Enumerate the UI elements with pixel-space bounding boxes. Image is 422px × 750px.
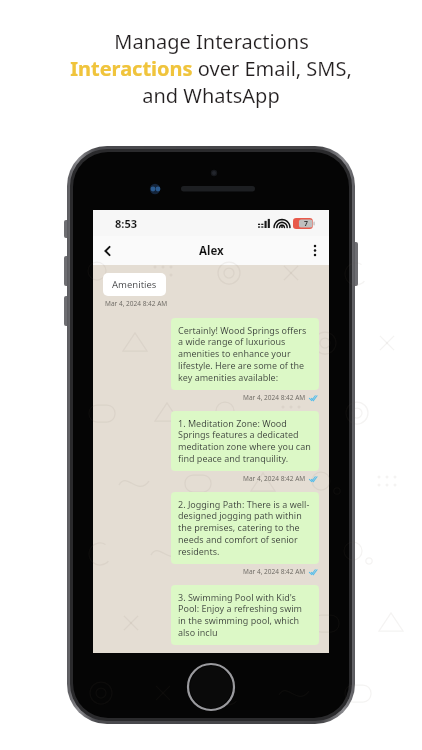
staticText: Manage Interactions xyxy=(114,28,309,55)
staticText: Alex xyxy=(199,243,224,259)
staticText: Amenities xyxy=(112,278,157,291)
staticText: Mar 4, 2024 8:42 AM xyxy=(243,393,306,402)
other: Home xyxy=(187,663,235,711)
button[interactable]: 3. Swimming Pool with Kid's Pool: Enjoy … xyxy=(171,585,319,645)
button[interactable]: 2. Jogging Path: There is a well-designe… xyxy=(171,492,319,564)
staticText: 7 xyxy=(304,219,309,229)
staticText: Mar 4, 2024 8:42 AM xyxy=(243,474,306,483)
staticText: Certainly! Wood Springs offers a wide ra… xyxy=(178,324,312,384)
button[interactable]: 1. Meditation Zone: Wood Springs feature… xyxy=(171,411,319,471)
staticText: 1. Meditation Zone: Wood Springs feature… xyxy=(178,417,312,465)
staticText: 8:53 xyxy=(115,216,137,231)
staticText: Mar 4, 2024 8:42 AM xyxy=(243,567,306,576)
staticText: Interactions over Email, SMS, xyxy=(70,55,352,82)
button[interactable]: Amenities xyxy=(103,273,166,296)
staticText: 3. Swimming Pool with Kid's Pool: Enjoy … xyxy=(178,591,312,639)
staticText: 2. Jogging Path: There is a well-designe… xyxy=(178,498,312,558)
button[interactable]: More options xyxy=(301,236,329,265)
staticText: and WhatsApp xyxy=(142,82,280,109)
staticText: Mar 4, 2024 8:42 AM xyxy=(105,299,168,308)
button[interactable]: Back xyxy=(93,236,123,265)
button[interactable]: Certainly! Wood Springs offers a wide ra… xyxy=(171,318,319,390)
